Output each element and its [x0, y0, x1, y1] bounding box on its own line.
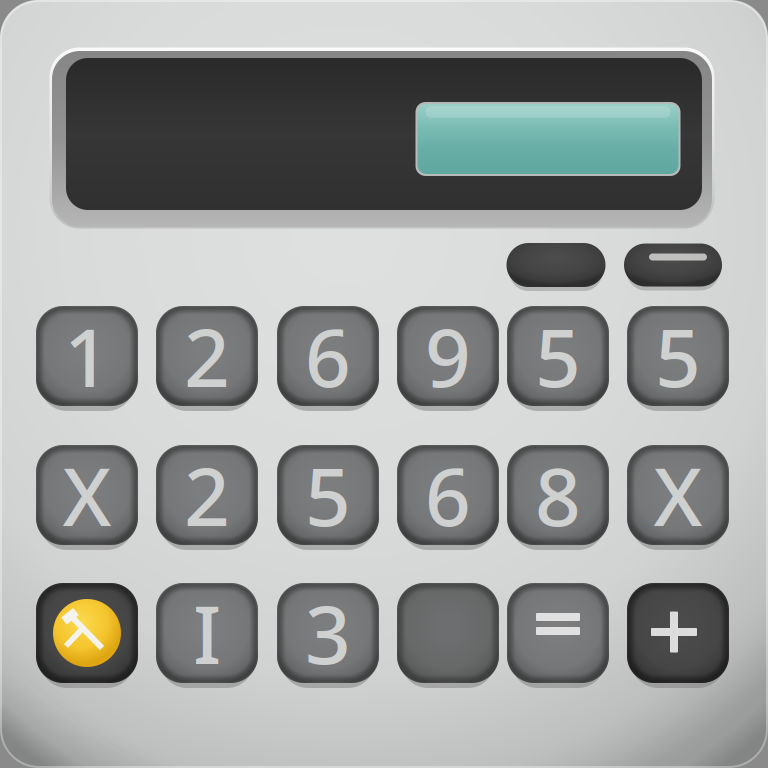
button[interactable]: 5 — [627, 306, 729, 406]
button[interactable]: 5 — [507, 306, 609, 406]
button[interactable]: 5 — [277, 445, 379, 545]
button[interactable]: X — [627, 445, 729, 545]
staticText: X — [62, 442, 111, 548]
button[interactable]: 6 — [277, 306, 379, 406]
staticText: 6 — [305, 303, 351, 409]
button[interactable]: On — [624, 243, 722, 286]
staticText: 1 — [64, 303, 110, 409]
button[interactable]: 2 — [156, 445, 258, 545]
staticText: 5 — [535, 303, 581, 409]
staticText: 9 — [425, 303, 471, 409]
button[interactable]: 9 — [397, 306, 499, 406]
staticText: 6 — [425, 442, 471, 548]
button[interactable]: 6 — [397, 445, 499, 545]
button[interactable]: 2 — [156, 306, 258, 406]
staticText: 2 — [184, 442, 230, 548]
staticText: X — [653, 442, 702, 548]
staticText: 5 — [305, 442, 351, 548]
staticText: 8 — [535, 442, 581, 548]
staticText: 3 — [305, 580, 351, 686]
button[interactable]: 8 — [507, 445, 609, 545]
button[interactable]: Clear — [506, 243, 605, 287]
staticText: 2 — [184, 303, 230, 409]
button[interactable] — [627, 583, 729, 683]
button[interactable] — [507, 583, 609, 683]
button[interactable] — [36, 583, 138, 683]
button[interactable]: 3 — [277, 583, 379, 683]
staticText: I — [193, 580, 221, 686]
button[interactable] — [397, 583, 499, 683]
button[interactable]: 1 — [36, 306, 138, 406]
button[interactable]: X — [36, 445, 138, 545]
staticText: 5 — [655, 303, 701, 409]
button[interactable]: I — [156, 583, 258, 683]
